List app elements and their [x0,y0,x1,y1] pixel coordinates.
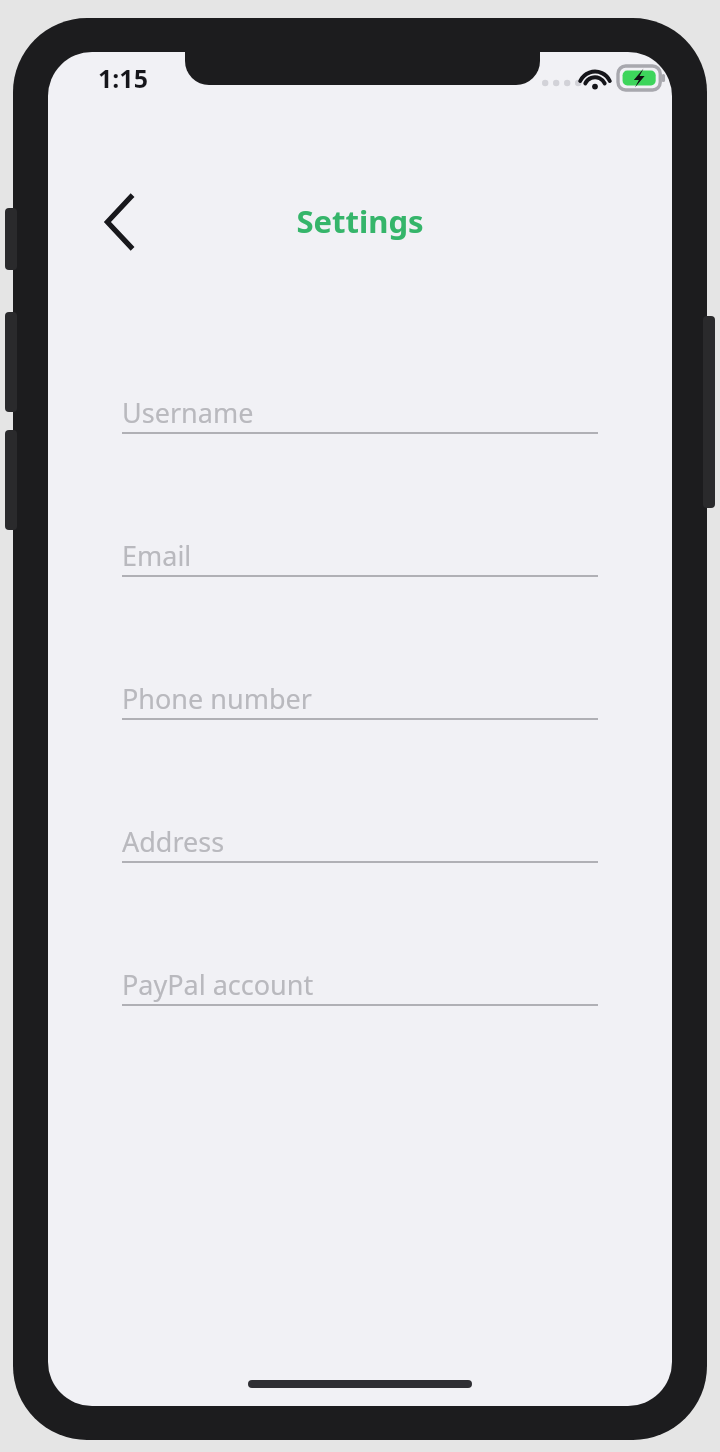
button[interactable]: Phone number [122,658,598,734]
button[interactable]: Address [122,801,598,877]
button[interactable]: Email [122,515,598,591]
button[interactable]: Username [122,372,598,448]
button[interactable]: PayPal account [122,944,598,1020]
staticText: Address [122,823,225,860]
staticText: Settings [48,200,672,242]
staticText: Phone number [122,680,312,717]
staticText: Email [122,537,192,574]
staticText: 1:15 [98,61,148,95]
staticText: PayPal account [122,966,314,1003]
staticText: Username [122,394,254,431]
button[interactable]: Back [78,180,162,264]
